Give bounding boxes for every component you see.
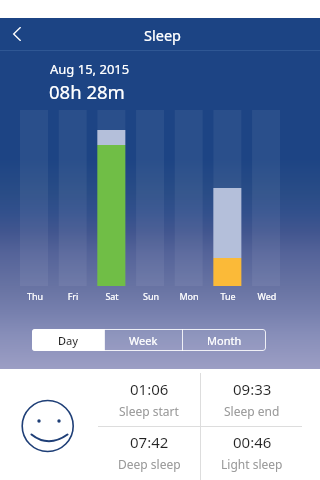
staticText: 00:46	[233, 432, 272, 452]
staticText: Sun	[137, 290, 165, 302]
button[interactable]: 00:46	[206, 432, 298, 472]
button[interactable]: Week	[105, 329, 182, 351]
staticText: Thu	[21, 290, 49, 302]
staticText: Light sleep	[221, 456, 283, 472]
staticText: 09:33	[233, 379, 272, 399]
button[interactable]: 01:06	[103, 379, 195, 419]
staticText: Fri	[59, 290, 87, 302]
staticText: Month	[207, 333, 242, 348]
button[interactable]: 07:42	[103, 432, 195, 472]
button[interactable]: Day	[32, 329, 104, 351]
staticText: Sleep end	[224, 403, 280, 419]
staticText: Wed	[253, 290, 281, 302]
staticText: Sat	[98, 290, 126, 302]
staticText: Sleep start	[119, 403, 179, 419]
staticText: Day	[58, 333, 79, 348]
staticText: Deep sleep	[118, 456, 181, 472]
button[interactable]: Back	[0, 18, 40, 50]
staticText: 01:06	[130, 379, 169, 399]
staticText: Sleep	[144, 25, 181, 45]
staticText: 08h 28m	[49, 79, 125, 104]
button[interactable]: Month	[183, 329, 266, 351]
staticText: Week	[129, 333, 158, 348]
staticText: Mon	[175, 290, 203, 302]
staticText: Aug 15, 2015	[50, 60, 130, 78]
staticText: Tue	[214, 290, 242, 302]
button[interactable]: Sleep quality: good	[20, 398, 76, 454]
button[interactable]: 09:33	[206, 379, 298, 419]
staticText: 07:42	[130, 432, 169, 452]
